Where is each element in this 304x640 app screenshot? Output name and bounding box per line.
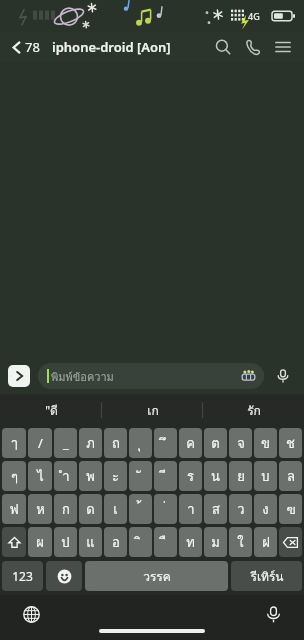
staticText: ห (36, 499, 45, 520)
button[interactable]: ม (204, 527, 227, 557)
button[interactable]: ย (229, 461, 252, 491)
button[interactable]: Menu (268, 32, 298, 62)
button[interactable]: ะ (104, 461, 127, 491)
button[interactable]: ง (254, 494, 277, 524)
button[interactable]: / (28, 428, 52, 458)
staticText: ส (212, 499, 220, 520)
button[interactable]: ฃ (279, 494, 302, 524)
button[interactable]: แ (79, 527, 102, 557)
button[interactable]: ้ (129, 494, 152, 524)
button[interactable]: Stickers (238, 366, 258, 386)
button[interactable]: ส (204, 494, 227, 524)
button[interactable]: ผ (28, 527, 52, 557)
staticText: ผ (36, 532, 44, 553)
button[interactable]: พิมพ์ข้อความ (38, 363, 264, 389)
button[interactable]: จ (229, 428, 252, 458)
staticText: รัก (247, 401, 261, 420)
button[interactable]: ั (129, 461, 152, 491)
button[interactable]: ด (79, 494, 102, 524)
button[interactable]: ช (279, 428, 302, 458)
staticText: จ (237, 433, 245, 454)
button[interactable]: รัก (203, 394, 304, 426)
button[interactable]: ป (54, 527, 77, 557)
staticText: พ (86, 466, 95, 487)
staticText: ช (286, 433, 295, 454)
button[interactable]: วรรค (85, 561, 228, 591)
staticText: ๅ (11, 433, 18, 454)
button[interactable]: Backspace (279, 527, 302, 557)
button[interactable]: บ (254, 461, 277, 491)
button[interactable]: รีเทิร์น (231, 561, 302, 591)
button[interactable]: ร (179, 461, 202, 491)
button[interactable]: 123 (2, 561, 43, 591)
button[interactable]: _ (54, 428, 77, 458)
staticText: ต (211, 433, 220, 454)
button[interactable]: อ (104, 527, 127, 557)
button[interactable]: iphone-droid [Aon] (52, 32, 171, 62)
button[interactable]: Call (238, 32, 268, 62)
staticText: ย (237, 466, 245, 487)
staticText: เก (147, 401, 159, 420)
button[interactable]: ภ (79, 428, 102, 458)
button[interactable]: ท (179, 527, 202, 557)
staticText: บ (261, 466, 270, 487)
staticText: 123 (12, 568, 33, 584)
staticText: ฃ (286, 499, 296, 520)
button[interactable]: ว (229, 494, 252, 524)
button[interactable]: เก (102, 394, 203, 426)
button[interactable]: ิ (129, 527, 152, 557)
button[interactable]: ล (279, 461, 302, 491)
button[interactable]: ใ (229, 527, 252, 557)
staticText: พิมพ์ข้อความ (51, 368, 114, 385)
staticText: ก (62, 499, 70, 520)
button[interactable]: Shift (2, 527, 26, 557)
button[interactable]: ฝ (254, 527, 277, 557)
button[interactable]: เ (104, 494, 127, 524)
button[interactable]: ึ (154, 428, 177, 458)
button[interactable]: Emoji (46, 561, 82, 591)
button[interactable]: ๆ (2, 461, 26, 491)
button[interactable]: ค (179, 428, 202, 458)
button[interactable]: ก (54, 494, 77, 524)
button[interactable]: า (179, 494, 202, 524)
staticText: ฝ (262, 532, 270, 553)
button[interactable]: ื (154, 527, 177, 557)
button[interactable]: ห (28, 494, 52, 524)
button[interactable]: Search (208, 32, 238, 62)
staticText: ล (287, 466, 295, 487)
staticText: ร (187, 466, 194, 487)
staticText: ำ (62, 466, 70, 487)
button[interactable]: ต (204, 428, 227, 458)
button[interactable]: ฟ (2, 494, 26, 524)
staticText: ม (211, 532, 220, 553)
staticText: ใ (237, 532, 244, 553)
staticText: อ (112, 532, 120, 553)
button[interactable]: พ (79, 461, 102, 491)
staticText: ภ (86, 433, 95, 454)
button[interactable]: น (204, 461, 227, 491)
button[interactable]: ข (254, 428, 277, 458)
button[interactable]: Change keyboard language (18, 601, 44, 627)
staticText: วรรค (143, 567, 171, 586)
staticText: น (211, 466, 220, 487)
button[interactable]: ำ (54, 461, 77, 491)
staticText: ค (186, 433, 195, 454)
button[interactable]: ี (154, 461, 177, 491)
staticText: ง (262, 499, 269, 520)
staticText: เ (113, 499, 118, 520)
staticText: า (187, 499, 195, 520)
button[interactable]: Voice message (270, 363, 296, 389)
button[interactable]: Voice input (260, 601, 286, 627)
button[interactable]: Back, 78 unread (8, 34, 44, 60)
staticText: _ (63, 434, 69, 452)
button[interactable]: ่ (154, 494, 177, 524)
staticText: "ดี (45, 401, 58, 420)
button[interactable]: ไ (28, 461, 52, 491)
staticText: ไ (37, 466, 44, 487)
button[interactable]: ถ (104, 428, 127, 458)
staticText: ข (261, 433, 270, 454)
button[interactable]: "ดี (0, 394, 102, 426)
button[interactable]: ๅ (2, 428, 26, 458)
button[interactable]: ุ (129, 428, 152, 458)
button[interactable]: Expand actions (8, 365, 30, 387)
